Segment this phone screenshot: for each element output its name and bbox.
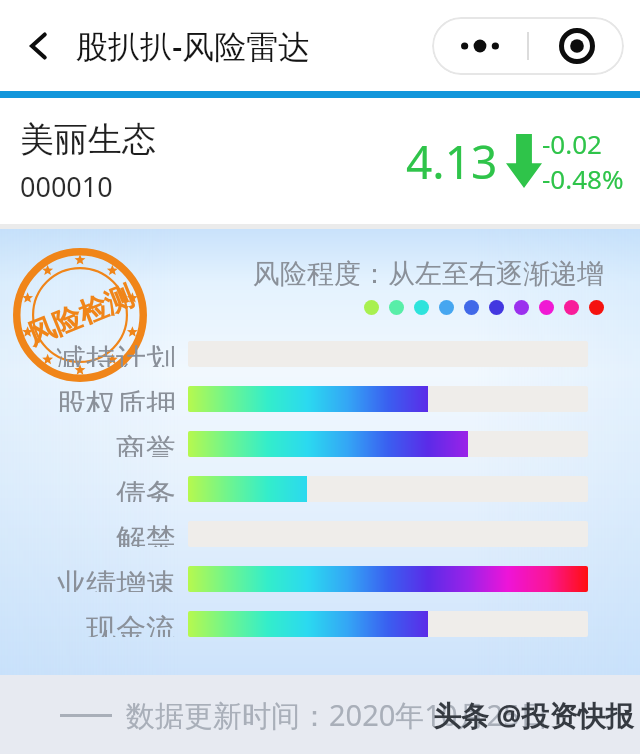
button[interactable]: 股权质押 — [0, 386, 640, 412]
staticText: -0.48% — [542, 161, 624, 196]
staticText: 风险检测 — [21, 278, 138, 353]
button[interactable]: 解禁 — [0, 521, 640, 547]
staticText: 商誉 — [116, 431, 176, 457]
button[interactable]: Back — [10, 17, 68, 75]
button[interactable]: Close mini program — [529, 17, 624, 75]
staticText: 4.13 — [406, 130, 498, 193]
staticText: 减持计划 — [56, 341, 176, 367]
button[interactable]: More options — [432, 17, 527, 75]
button[interactable]: 减持计划 — [0, 341, 640, 367]
staticText: 债务 — [116, 476, 176, 502]
staticText: 股权质押 — [56, 386, 176, 412]
staticText: 业绩增速 — [56, 566, 176, 592]
staticText: 股扒扒-风险雷达 — [76, 24, 311, 68]
staticText: 现金流 — [86, 611, 176, 637]
staticText: 美丽生态 — [20, 118, 156, 161]
staticText: -0.02 — [542, 126, 602, 161]
staticText: 解禁 — [116, 521, 176, 547]
staticText: 风险程度：从左至右逐渐递增 — [253, 257, 604, 291]
staticText: 000010 — [20, 168, 113, 205]
button[interactable]: 债务 — [0, 476, 640, 502]
button[interactable]: 现金流 — [0, 611, 640, 637]
button[interactable]: 业绩增速 — [0, 566, 640, 592]
staticText: 头条 @投资快报 — [433, 696, 634, 734]
button[interactable]: 商誉 — [0, 431, 640, 457]
staticText: 数据更新时间：2020年10月25日 — [126, 695, 549, 735]
